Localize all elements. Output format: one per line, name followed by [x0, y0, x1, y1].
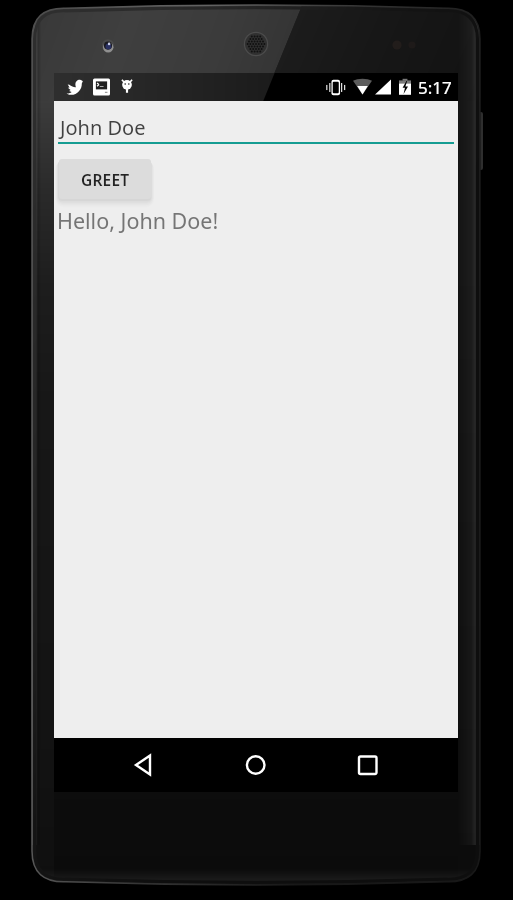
- staticText: GREET: [81, 169, 130, 190]
- staticText: Hello, John Doe!: [57, 206, 219, 235]
- button[interactable]: Back: [131, 751, 159, 779]
- button[interactable]: GREET: [59, 159, 151, 199]
- button[interactable]: Recents: [354, 751, 382, 779]
- staticText: 5:17: [418, 76, 452, 99]
- button[interactable]: Home: [242, 751, 270, 779]
- staticText: John Doe: [60, 114, 146, 141]
